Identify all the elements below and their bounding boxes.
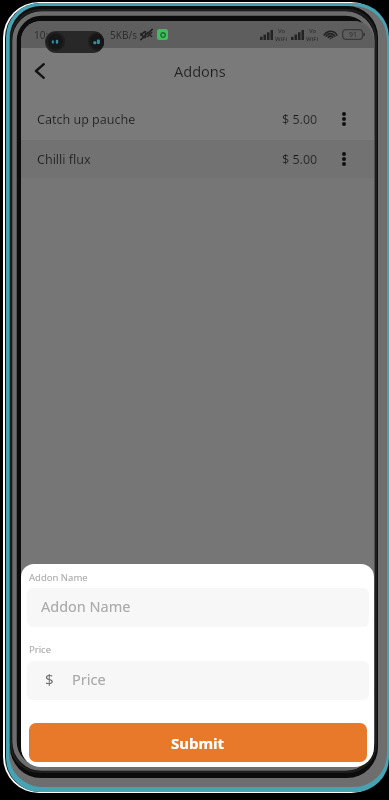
- staticText: Chilli flux: [37, 151, 91, 168]
- button[interactable]: Catch up pauche: [21, 98, 374, 140]
- button[interactable]: Submit: [29, 723, 367, 762]
- staticText: $ 5.00: [282, 151, 318, 168]
- button[interactable]: More options: [335, 150, 353, 168]
- button[interactable]: More options: [335, 110, 353, 128]
- staticText: Submit: [171, 733, 225, 753]
- staticText: Addons: [174, 61, 226, 81]
- staticText: WiFi: [275, 35, 288, 43]
- staticText: $ 5.00: [282, 111, 318, 128]
- staticText: Addon Name: [29, 571, 88, 584]
- staticText: 5KB/s: [110, 28, 137, 42]
- staticText: Vo: [278, 27, 286, 35]
- staticText: 91: [349, 30, 358, 40]
- button[interactable]: Back: [23, 54, 57, 88]
- staticText: Price: [29, 643, 52, 656]
- staticText: Catch up pauche: [37, 111, 136, 128]
- staticText: WiFi: [306, 35, 319, 43]
- staticText: Addon Name: [41, 596, 131, 616]
- staticText: Price: [72, 669, 106, 689]
- button[interactable]: Addon Name: [27, 588, 369, 627]
- button[interactable]: Chilli flux: [21, 140, 374, 178]
- button[interactable]: $: [27, 661, 369, 700]
- staticText: $: [45, 669, 54, 689]
- staticText: Vo: [309, 27, 317, 35]
- staticText: 10:: [34, 28, 49, 42]
